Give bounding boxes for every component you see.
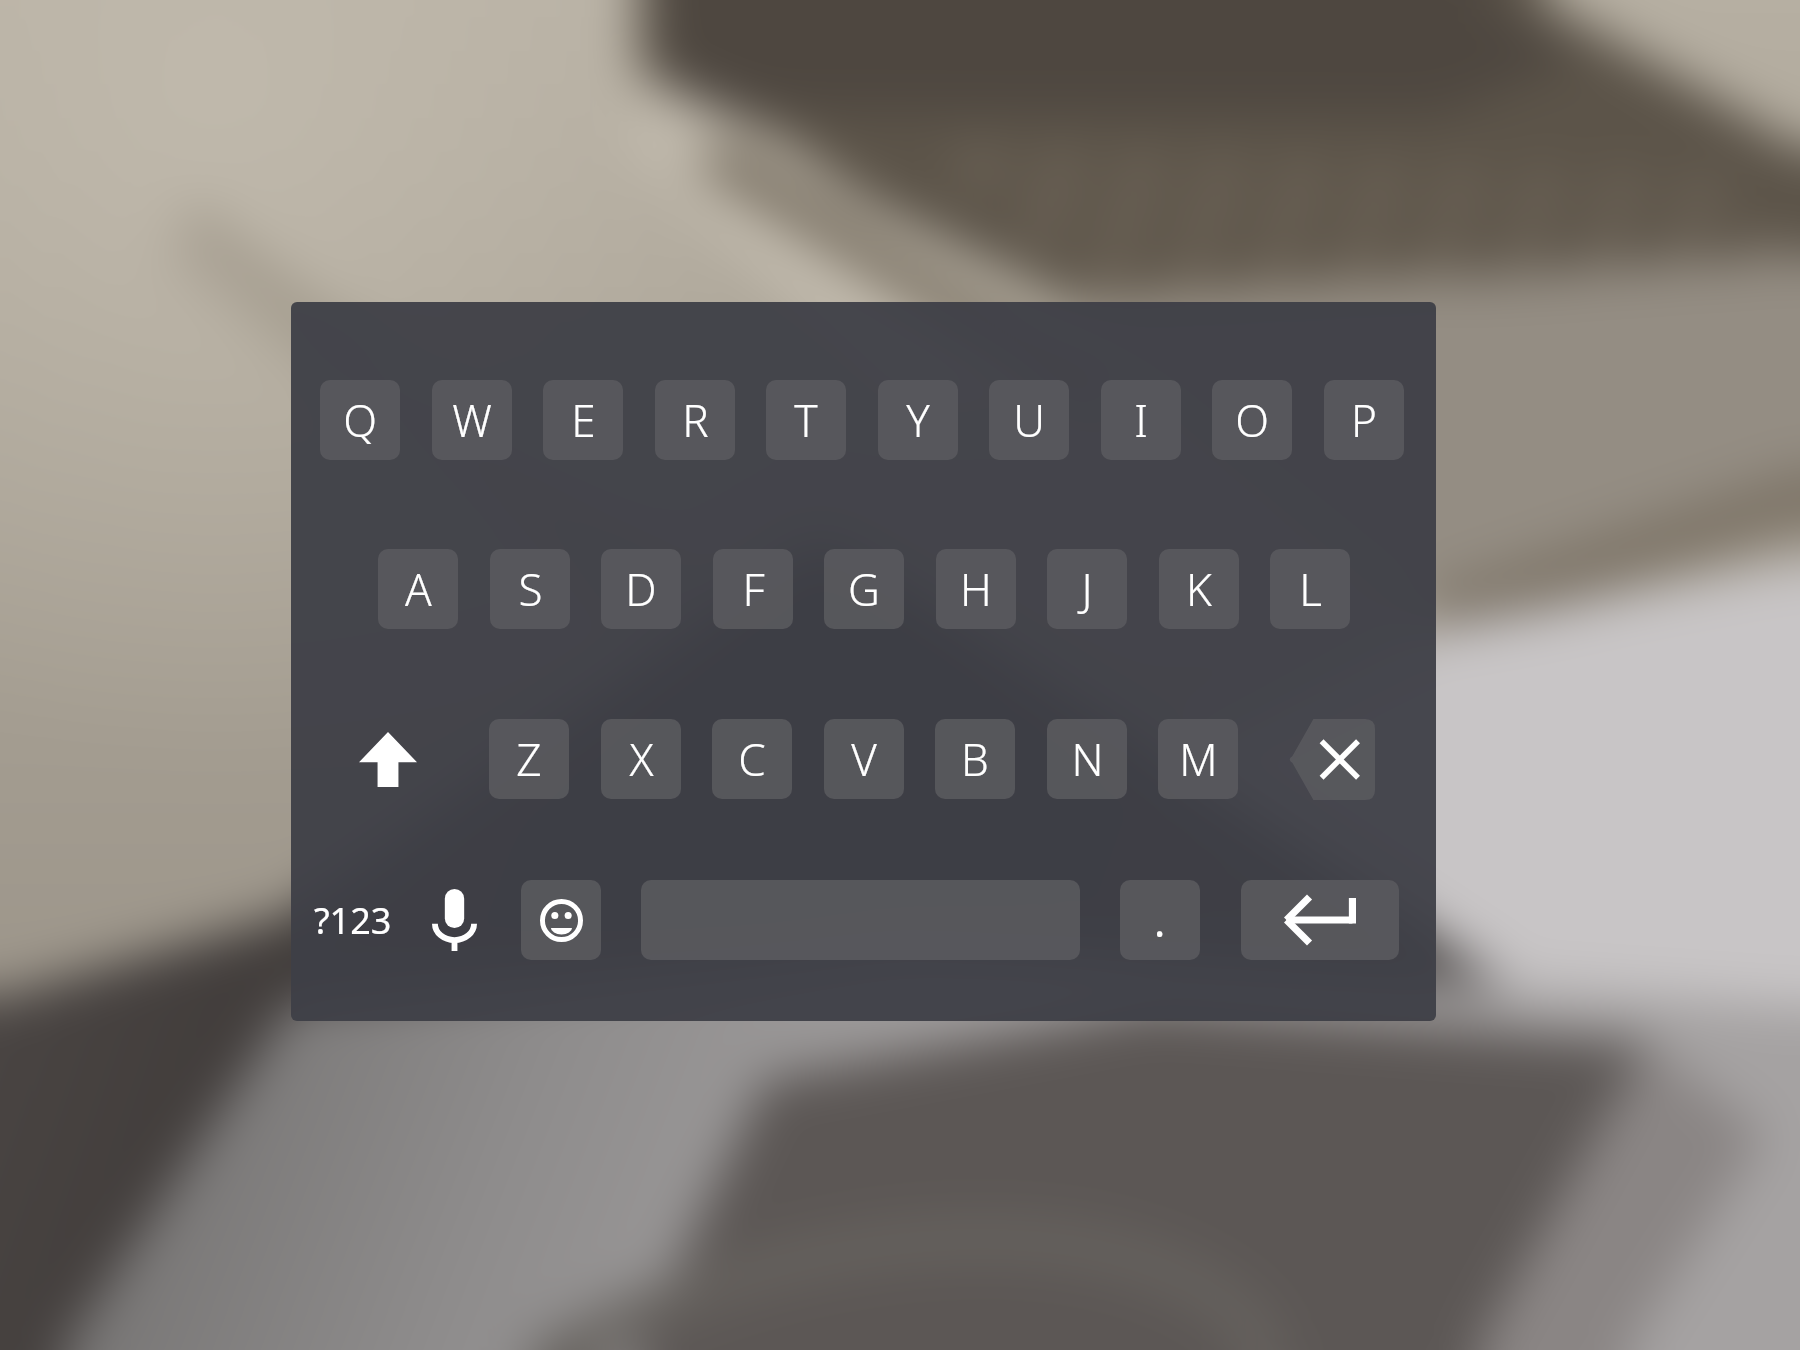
staticText: T [794,390,818,450]
button[interactable]: W [432,380,512,460]
button[interactable]: J [1047,549,1127,629]
button[interactable]: K [1159,549,1239,629]
button[interactable]: G [824,549,904,629]
button[interactable]: L [1270,549,1350,629]
button[interactable]: E [543,380,623,460]
button[interactable]: O [1212,380,1292,460]
staticText: K [1186,559,1212,619]
staticText: P [1351,390,1377,450]
staticText: X [629,729,654,789]
staticText: O [1235,390,1269,450]
staticText: J [1081,559,1093,619]
staticText: I [1134,390,1148,450]
staticText: B [961,729,989,789]
button[interactable]: Voice input [414,880,494,960]
staticText: F [742,559,765,619]
button[interactable]: Shift [348,719,428,799]
button[interactable]: Backspace [1287,719,1375,800]
button[interactable]: V [824,719,904,799]
button[interactable]: P [1324,380,1404,460]
button[interactable]: Enter [1241,880,1399,960]
button[interactable]: . [1120,880,1200,960]
button[interactable]: H [936,549,1016,629]
button[interactable]: D [601,549,681,629]
staticText: L [1299,559,1322,619]
staticText: ?123 [314,896,392,945]
button[interactable]: T [766,380,846,460]
staticText: G [848,559,880,619]
button[interactable]: M [1158,719,1238,799]
button[interactable]: Y [878,380,958,460]
staticText: R [682,390,709,450]
button[interactable]: Emoji [521,880,601,960]
button[interactable]: B [935,719,1015,799]
staticText: M [1179,729,1218,789]
staticText: W [452,390,492,450]
staticText: A [405,559,432,619]
button[interactable]: I [1101,380,1181,460]
button[interactable]: R [655,380,735,460]
staticText: U [1013,390,1045,450]
button[interactable]: A [378,549,458,629]
button[interactable]: F [713,549,793,629]
staticText: . [1154,892,1166,949]
staticText: D [625,559,657,619]
staticText: N [1071,729,1104,789]
staticText: Y [906,390,930,450]
staticText: V [851,729,877,789]
staticText: Z [516,729,542,789]
button[interactable]: Q [320,380,400,460]
staticText: H [960,559,992,619]
button[interactable]: C [712,719,792,799]
button[interactable]: Z [489,719,569,799]
button[interactable]: S [490,549,570,629]
staticText: E [571,390,596,450]
button[interactable]: N [1047,719,1127,799]
button[interactable]: ?123 [305,880,401,960]
staticText: S [518,559,543,619]
staticText: Q [343,390,377,450]
staticText: C [738,729,766,789]
button[interactable]: U [989,380,1069,460]
button[interactable]: X [601,719,681,799]
